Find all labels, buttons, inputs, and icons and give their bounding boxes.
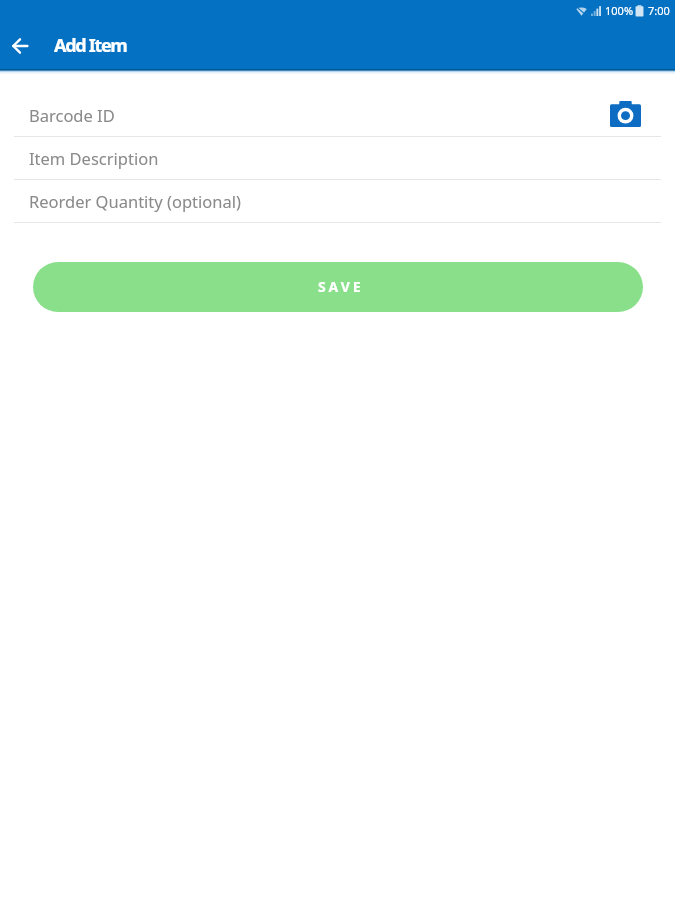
button[interactable]: Back [0, 22, 40, 69]
button[interactable]: Scan barcode [604, 93, 646, 135]
button[interactable]: Barcode ID [14, 94, 661, 136]
button[interactable]: SAVE [33, 262, 643, 312]
staticText: 100% [605, 3, 634, 18]
button[interactable]: Item Description [14, 137, 661, 179]
staticText: 7:00 [648, 3, 670, 18]
staticText: Add Item [54, 33, 127, 58]
staticText: Barcode ID [29, 104, 115, 126]
staticText: Item Description [29, 147, 159, 169]
button[interactable]: Reorder Quantity (optional) [14, 180, 661, 222]
staticText: SAVE [318, 277, 364, 296]
staticText: Reorder Quantity (optional) [29, 190, 241, 212]
